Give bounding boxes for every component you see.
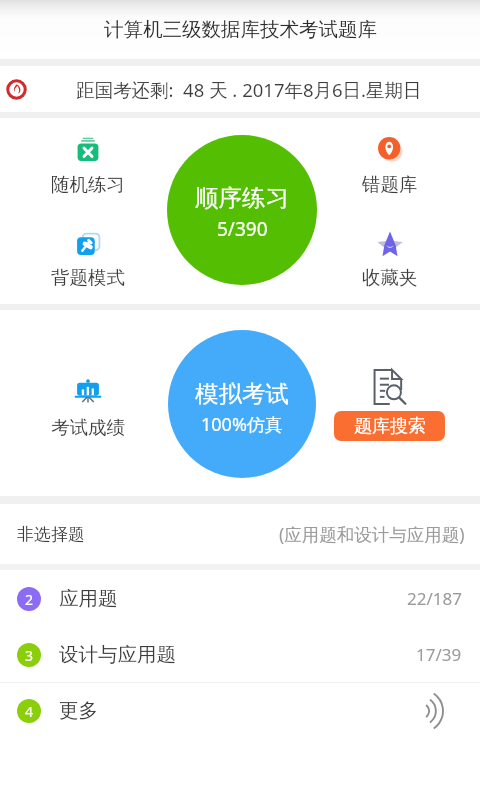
staticText: 2 bbox=[25, 590, 34, 609]
button[interactable]: 3 bbox=[0, 627, 480, 682]
staticText: 5/390 bbox=[217, 216, 268, 242]
button[interactable]: 2 bbox=[0, 571, 480, 626]
staticText: 100%仿真 bbox=[201, 412, 283, 437]
staticText: 非选择题 bbox=[17, 524, 85, 545]
staticText: 3 bbox=[25, 646, 34, 665]
other: 更多 bbox=[422, 696, 443, 726]
staticText: 题库搜索 bbox=[354, 415, 426, 438]
staticText: 模拟考试 bbox=[195, 379, 289, 409]
button[interactable]: 考试成绩 bbox=[28, 370, 148, 443]
button[interactable]: 模拟考试 bbox=[168, 330, 316, 478]
staticText: 4 bbox=[25, 702, 34, 721]
button[interactable]: 4 bbox=[0, 683, 480, 738]
staticText: 随机练习 bbox=[51, 173, 125, 196]
staticText: 距国考还剩: 48 天 . 2017年8月6日.星期日 bbox=[76, 77, 422, 102]
staticText: 17/39 bbox=[416, 643, 462, 666]
staticText: 考试成绩 bbox=[51, 416, 125, 439]
button[interactable]: 题库搜索 bbox=[334, 411, 445, 441]
staticText: 应用题 bbox=[59, 586, 118, 611]
staticText: 22/187 bbox=[407, 587, 462, 610]
button[interactable]: 收藏夹 bbox=[330, 224, 450, 293]
staticText: 更多 bbox=[59, 698, 98, 723]
button[interactable]: 错题库 bbox=[330, 129, 450, 200]
staticText: 顺序练习 bbox=[195, 183, 289, 213]
staticText: 错题库 bbox=[362, 173, 418, 196]
button[interactable]: 题库搜索 bbox=[370, 368, 408, 406]
staticText: 设计与应用题 bbox=[59, 642, 176, 667]
staticText: 收藏夹 bbox=[362, 266, 418, 289]
staticText: 背题模式 bbox=[51, 266, 125, 289]
other: 考试倒计时 bbox=[7, 80, 26, 99]
staticText: (应用题和设计与应用题) bbox=[279, 522, 465, 546]
staticText: 计算机三级数据库技术考试题库 bbox=[104, 17, 377, 42]
button[interactable]: 随机练习 bbox=[28, 129, 148, 200]
button[interactable]: 顺序练习 bbox=[167, 135, 317, 285]
button[interactable]: 背题模式 bbox=[28, 224, 148, 293]
